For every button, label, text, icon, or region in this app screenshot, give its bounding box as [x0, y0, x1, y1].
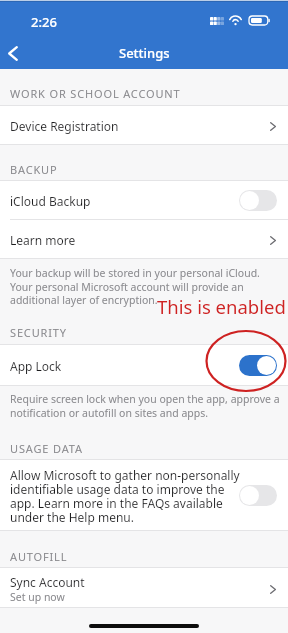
- staticText: WORK OR SCHOOL ACCOUNT: [10, 86, 181, 101]
- button[interactable]: Allow Microsoft to gather non-personally…: [0, 460, 288, 531]
- staticText: Set up now: [10, 590, 65, 604]
- staticText: SECURITY: [10, 325, 67, 340]
- staticText: Device Registration: [10, 118, 119, 134]
- button[interactable]: Back: [0, 35, 26, 69]
- staticText: BACKUP: [10, 162, 58, 177]
- button[interactable]: App Lock: [0, 345, 288, 385]
- staticText: Allow Microsoft to gather non-personally…: [10, 467, 246, 525]
- button[interactable]: Learn more: [0, 220, 288, 258]
- staticText: Your backup will be stored in your perso…: [10, 266, 283, 307]
- staticText: Settings: [119, 44, 170, 62]
- staticText: App Lock: [10, 358, 62, 374]
- staticText: Learn more: [10, 232, 76, 248]
- button[interactable]: iCloud Backup: [0, 181, 288, 219]
- staticText: AUTOFILL: [10, 549, 68, 564]
- staticText: Require screen lock when you open the ap…: [10, 392, 283, 420]
- staticText: Sync Account: [10, 574, 85, 590]
- staticText: 2:26: [31, 13, 57, 31]
- button[interactable]: Sync Account: [0, 568, 288, 608]
- staticText: This is enabled: [157, 294, 286, 319]
- button[interactable]: Device Registration: [0, 106, 288, 144]
- staticText: iCloud Backup: [10, 193, 91, 209]
- staticText: USAGE DATA: [10, 441, 83, 456]
